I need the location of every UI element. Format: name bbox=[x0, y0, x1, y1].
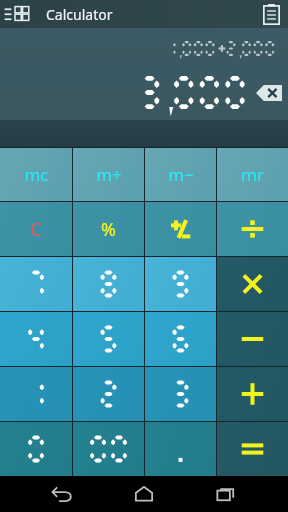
button[interactable] bbox=[0, 422, 72, 476]
button[interactable]: Menu bbox=[0, 0, 46, 28]
button[interactable] bbox=[73, 422, 144, 476]
button[interactable]: mc bbox=[0, 148, 72, 201]
staticText: mc bbox=[24, 163, 49, 186]
button[interactable] bbox=[217, 257, 288, 311]
button[interactable] bbox=[145, 202, 216, 256]
button[interactable] bbox=[145, 367, 216, 421]
button[interactable] bbox=[145, 422, 216, 476]
button[interactable]: Backspace bbox=[253, 82, 285, 104]
button[interactable]: m+ bbox=[73, 148, 144, 201]
button[interactable] bbox=[0, 257, 72, 311]
staticText: Calculator bbox=[46, 5, 113, 24]
button[interactable]: History bbox=[254, 0, 288, 28]
staticText: m− bbox=[168, 163, 194, 186]
button[interactable] bbox=[0, 312, 72, 366]
button[interactable]: m− bbox=[145, 148, 216, 201]
button[interactable]: Home bbox=[124, 479, 164, 509]
button[interactable] bbox=[145, 257, 216, 311]
button[interactable] bbox=[73, 367, 144, 421]
button[interactable]: mr bbox=[217, 148, 288, 201]
button[interactable] bbox=[217, 422, 288, 476]
button[interactable] bbox=[73, 257, 144, 311]
button[interactable] bbox=[217, 312, 288, 366]
button[interactable]: Recents bbox=[206, 479, 246, 509]
button[interactable]: % bbox=[73, 202, 144, 256]
staticText: C bbox=[30, 217, 42, 242]
button[interactable] bbox=[217, 367, 288, 421]
button[interactable]: Back bbox=[42, 479, 82, 509]
button[interactable] bbox=[217, 202, 288, 256]
staticText: m+ bbox=[96, 163, 122, 186]
staticText: mr bbox=[241, 163, 264, 186]
staticText: % bbox=[101, 217, 116, 242]
button[interactable] bbox=[73, 312, 144, 366]
button[interactable] bbox=[0, 367, 72, 421]
button[interactable]: C bbox=[0, 202, 72, 256]
button[interactable] bbox=[145, 312, 216, 366]
